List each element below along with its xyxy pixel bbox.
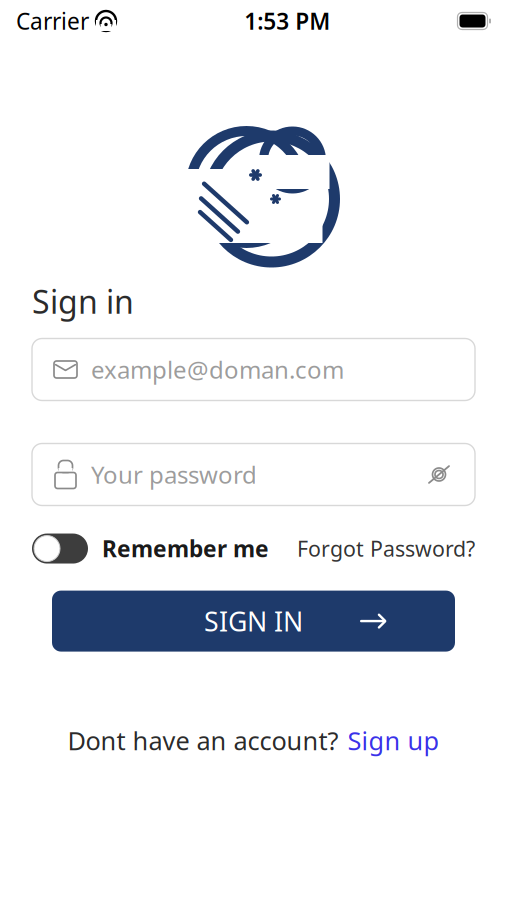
staticText: Your password bbox=[91, 459, 257, 490]
button[interactable]: Your password bbox=[32, 443, 475, 505]
button[interactable]: Sign up bbox=[347, 724, 439, 757]
staticText: Forgot Password? bbox=[297, 534, 475, 563]
button[interactable]: SIGN IN bbox=[52, 591, 455, 652]
button[interactable]: Remember me bbox=[32, 533, 269, 564]
staticText: Remember me bbox=[102, 533, 269, 564]
staticText: Sign up bbox=[347, 724, 439, 757]
staticText: Sign in bbox=[32, 280, 134, 322]
staticText: Dont have an account? bbox=[67, 724, 338, 757]
staticText: SIGN IN bbox=[204, 603, 303, 639]
button[interactable]: example@doman.com bbox=[32, 338, 475, 400]
button[interactable]: Forgot Password? bbox=[297, 534, 475, 563]
staticText: Carrier bbox=[16, 6, 89, 36]
staticText: example@doman.com bbox=[91, 354, 344, 385]
staticText: 1:53 PM bbox=[244, 6, 330, 36]
